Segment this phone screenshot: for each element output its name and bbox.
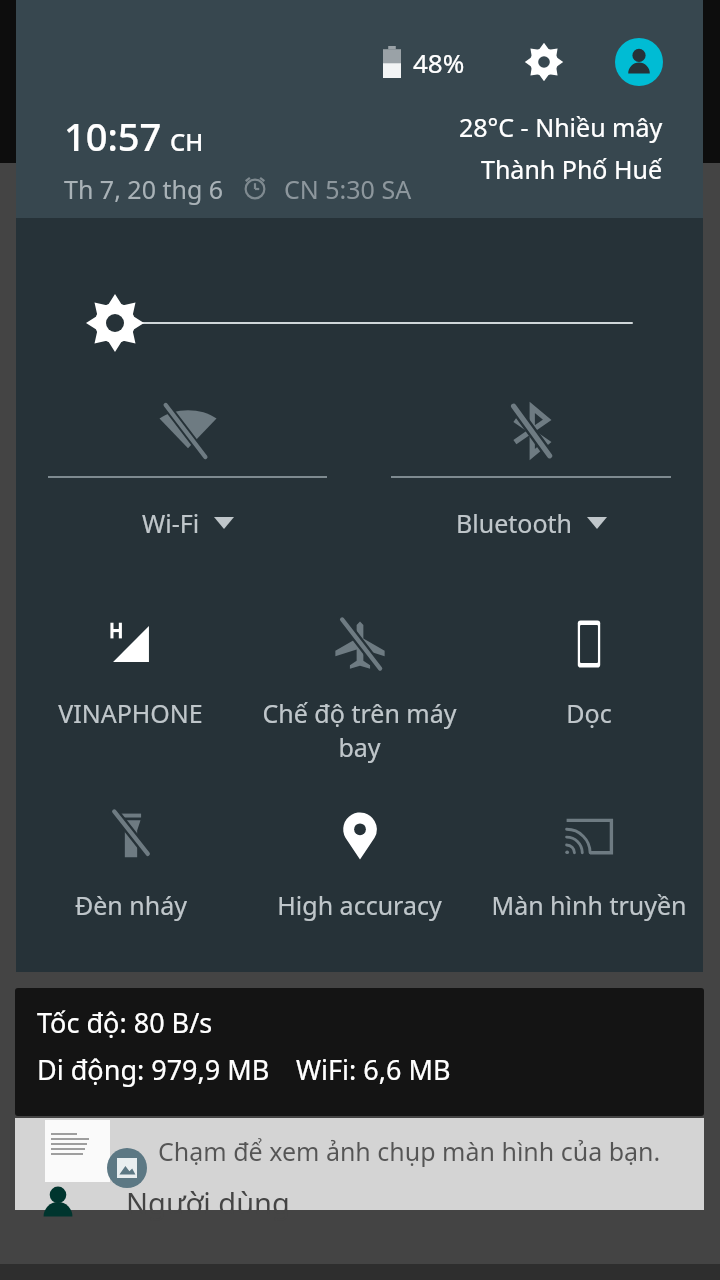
button[interactable]: Location high accuracy	[245, 806, 474, 922]
button[interactable]: Bluetooth off	[359, 400, 703, 540]
staticText: Thành Phố Huế	[481, 152, 663, 186]
staticText: WiFi: 6,6 MB	[296, 1051, 451, 1088]
staticText: Di động: 979,9 MB	[37, 1051, 270, 1088]
other: Bluetooth off	[500, 400, 562, 462]
other: Mobile signal VINAPHONE	[103, 616, 159, 672]
button[interactable]: User profile	[615, 38, 663, 86]
button[interactable]: Mobile signal VINAPHONE	[16, 614, 245, 730]
other: Battery 48 percent	[383, 46, 401, 78]
other: Flashlight off	[103, 808, 159, 864]
button[interactable]: Tốc độ: 80 B/s	[15, 988, 704, 1116]
button[interactable]: Wi-Fi off	[16, 400, 359, 540]
other: Airplane mode off	[332, 616, 388, 672]
other: Location high accuracy	[332, 808, 388, 864]
other: Wi-Fi off	[157, 400, 219, 462]
staticText: Chế độ trên máy bay	[251, 696, 468, 764]
button[interactable]: Flashlight off	[16, 806, 245, 922]
button[interactable]: Chạm để xem ảnh chụp màn hình của bạn.	[15, 1118, 704, 1210]
staticText: 28°C - Nhiều mây	[459, 110, 663, 144]
staticText: Tốc độ: 80 B/s	[37, 1004, 213, 1041]
staticText: Người dùng	[126, 1183, 290, 1222]
button[interactable]: Người dùng	[0, 1172, 720, 1232]
button[interactable]: Settings	[521, 39, 567, 85]
staticText: Màn hình truyền	[491, 888, 687, 922]
staticText: 48%	[413, 45, 465, 80]
button[interactable]: Cast screen	[474, 806, 703, 922]
staticText: Bluetooth	[456, 506, 573, 540]
button[interactable]: Airplane mode off	[245, 614, 474, 764]
button[interactable]: Brightness	[16, 288, 703, 358]
staticText: Đèn nháy	[75, 888, 187, 922]
other: Cast screen	[561, 808, 617, 864]
staticText: CH	[170, 125, 204, 158]
staticText: High accuracy	[277, 888, 442, 922]
staticText: Wi-Fi	[142, 506, 200, 540]
staticText: 10:57	[64, 110, 162, 162]
button[interactable]: Screen rotation portrait	[474, 614, 703, 730]
staticText: CN 5:30 SA	[284, 172, 412, 206]
other: Screen rotation portrait	[561, 616, 617, 672]
staticText: Dọc	[566, 696, 612, 730]
staticText: Chạm để xem ảnh chụp màn hình của bạn.	[158, 1134, 661, 1168]
staticText: Th 7, 20 thg 6	[64, 172, 224, 206]
staticText: VINAPHONE	[58, 696, 203, 730]
